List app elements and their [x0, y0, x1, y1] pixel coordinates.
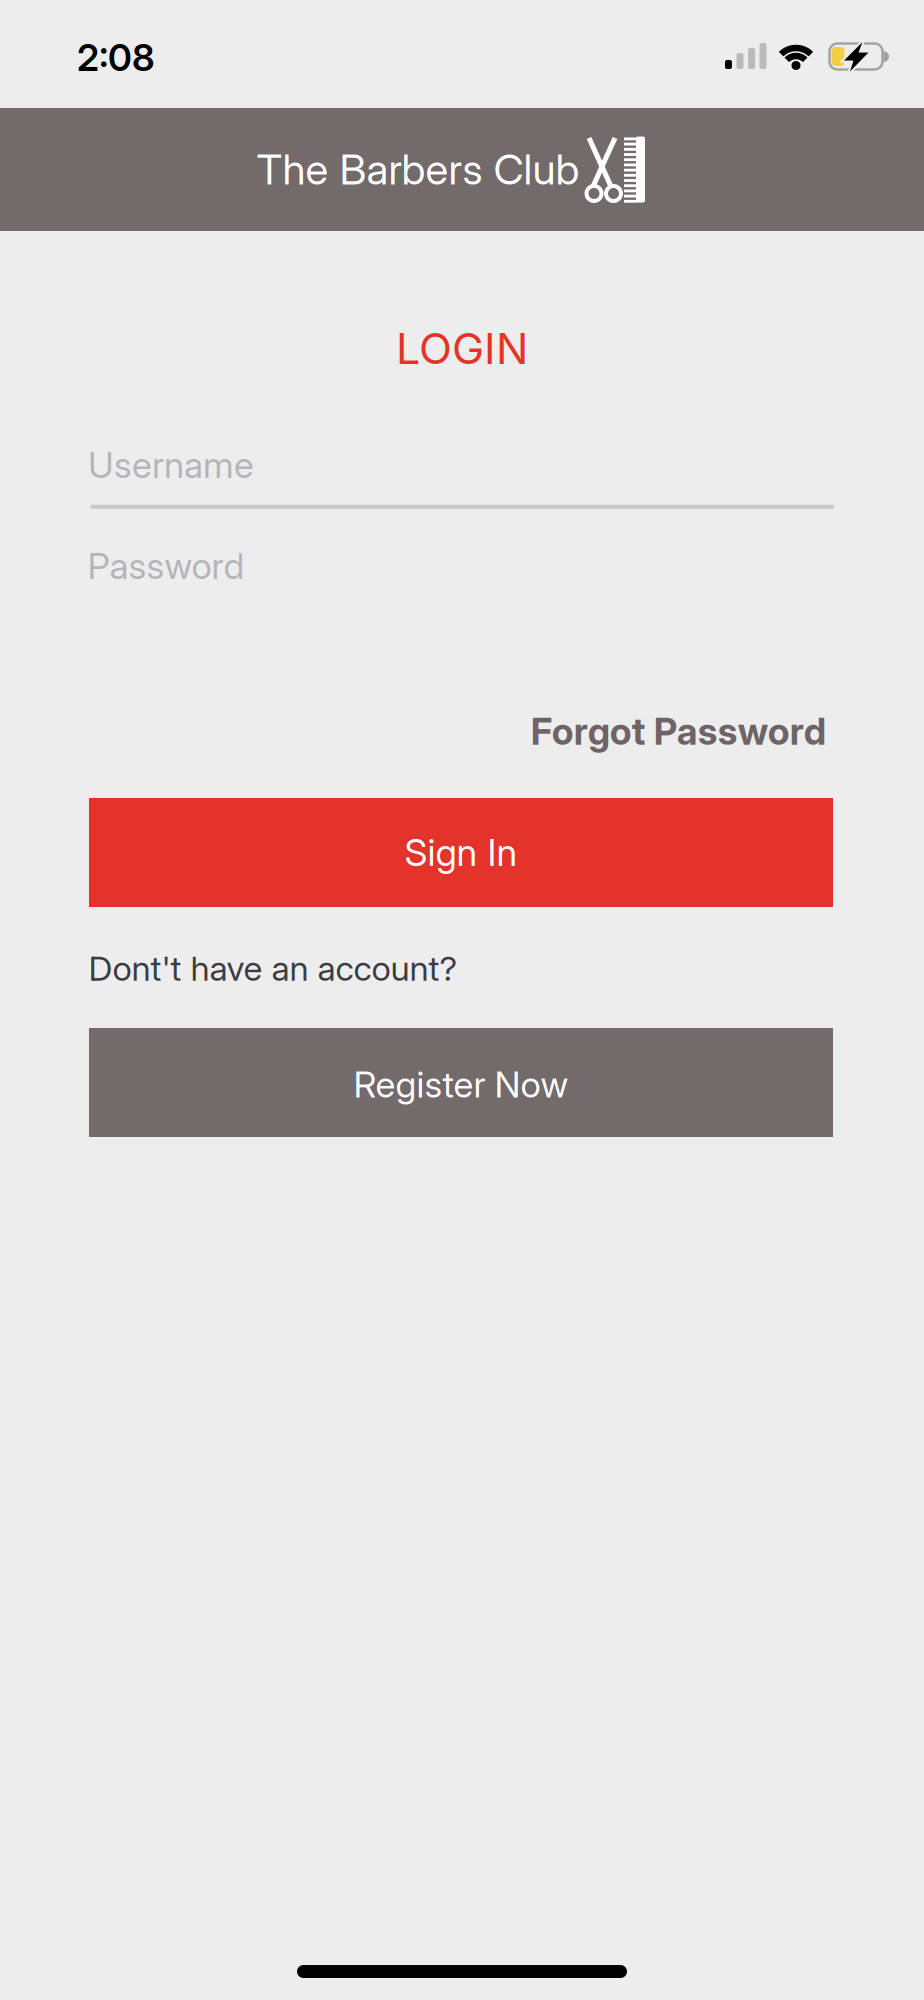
staticText: 2:08 — [77, 36, 155, 79]
staticText: LOGIN — [396, 323, 528, 374]
button[interactable]: Sign In — [89, 798, 833, 907]
staticText: Forgot Password — [531, 709, 826, 753]
staticText: Dont't have an account? — [88, 948, 457, 988]
staticText: The Barbers Club — [256, 144, 579, 194]
staticText: Password — [87, 545, 244, 587]
staticText: Sign In — [404, 831, 517, 874]
button[interactable]: Register Now — [89, 1028, 833, 1137]
staticText: Username — [88, 444, 254, 486]
button[interactable]: Forgot Password — [531, 709, 826, 753]
button[interactable]: Username — [90, 426, 834, 510]
staticText: Register Now — [353, 1063, 568, 1106]
button[interactable]: Password — [90, 540, 834, 590]
